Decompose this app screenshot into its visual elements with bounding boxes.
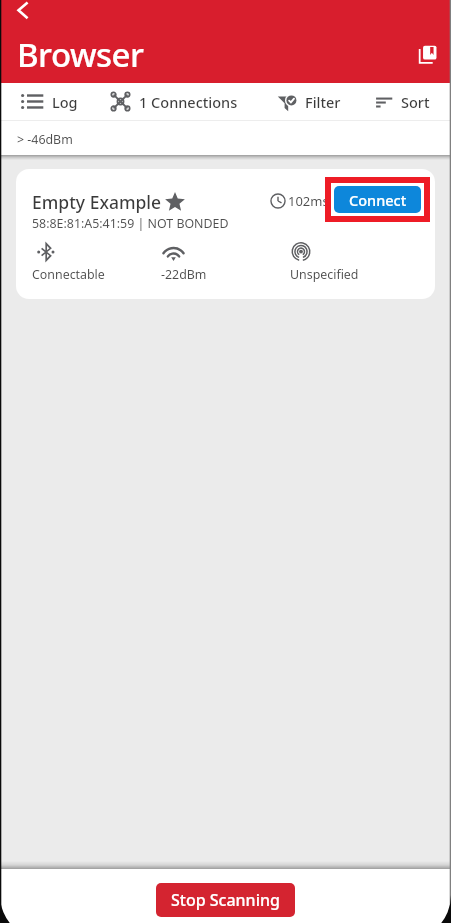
- staticText: 1 Connections: [139, 92, 238, 112]
- button[interactable]: Library: [416, 42, 440, 66]
- button[interactable]: Empty Example: [16, 169, 435, 299]
- button[interactable]: Stop Scanning: [156, 883, 295, 917]
- staticText: Sort: [401, 92, 430, 112]
- button[interactable]: Sort: [369, 83, 436, 120]
- staticText: 102ms: [288, 192, 329, 210]
- staticText: -22dBm: [161, 266, 207, 283]
- staticText: Filter: [305, 92, 341, 112]
- button[interactable]: Log: [0, 83, 99, 120]
- button[interactable]: 1 Connections: [99, 83, 249, 120]
- staticText: Log: [52, 92, 78, 112]
- staticText: 58:8E:81:A5:41:59 | NOT BONDED: [32, 215, 229, 232]
- staticText: Browser: [17, 32, 144, 77]
- staticText: > -46dBm: [17, 131, 73, 148]
- staticText: Unspecified: [290, 266, 359, 283]
- staticText: Stop Scanning: [171, 889, 280, 911]
- staticText: Empty Example: [32, 190, 162, 214]
- button[interactable]: Back: [8, 0, 36, 28]
- staticText: Connectable: [32, 266, 105, 283]
- button[interactable]: Filter: [249, 83, 369, 120]
- button[interactable]: Connect: [334, 186, 421, 213]
- staticText: Connect: [349, 190, 407, 210]
